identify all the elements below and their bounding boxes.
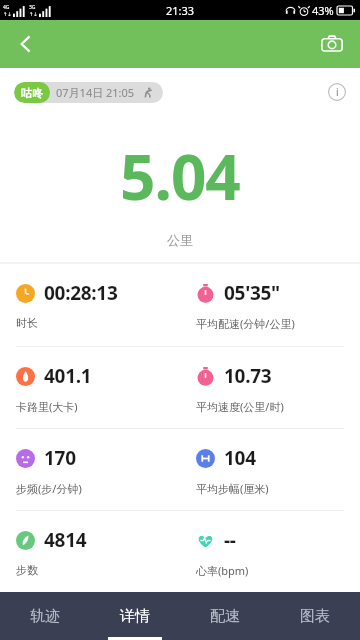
staticText: i [336, 85, 339, 99]
staticText: -- [224, 527, 236, 553]
staticText: 4814 [44, 527, 87, 553]
button[interactable]: 10.73 [180, 347, 360, 428]
staticText: 平均步幅(厘米) [196, 481, 269, 496]
staticText: ↑↓ [3, 11, 12, 17]
button[interactable]: 401.1 [0, 347, 180, 428]
staticText: 平均配速(分钟/公里) [196, 316, 295, 331]
staticText: 07月14日 21:05 [56, 85, 135, 100]
button[interactable]: 104 [180, 429, 360, 510]
button[interactable]: 详情 [90, 592, 180, 640]
button[interactable]: 00:28:13 [0, 264, 180, 346]
staticText: 心率(bpm) [196, 563, 249, 578]
staticText: 卡路里(大卡) [16, 399, 78, 414]
staticText: 咕咚 [21, 86, 43, 100]
staticText: 10.73 [224, 363, 272, 389]
button[interactable]: 咕咚 [14, 82, 163, 103]
button[interactable]: 配速 [180, 592, 270, 640]
staticText: 5.04 [120, 134, 240, 218]
staticText: 轨迹 [30, 607, 60, 626]
button[interactable]: 轨迹 [0, 592, 90, 640]
button[interactable]: 图表 [270, 592, 360, 640]
staticText: 21:33 [166, 3, 195, 18]
staticText: 05'35" [224, 280, 280, 306]
staticText: 4G [3, 4, 10, 11]
staticText: 步数 [16, 563, 38, 577]
staticText: 平均速度(公里/时) [196, 399, 284, 414]
staticText: 3G [29, 4, 36, 11]
staticText: 详情 [120, 607, 150, 626]
button[interactable]: Back [6, 24, 46, 64]
button[interactable]: 170 [0, 429, 180, 510]
button[interactable]: Camera [312, 24, 352, 64]
staticText: 公里 [167, 232, 193, 248]
staticText: 401.1 [44, 363, 92, 389]
button[interactable]: 05'35" [180, 264, 360, 346]
staticText: 00:28:13 [44, 280, 118, 306]
button[interactable]: -- [180, 511, 360, 592]
staticText: 配速 [210, 607, 240, 626]
staticText: 170 [44, 445, 76, 471]
staticText: 图表 [300, 607, 330, 626]
staticText: 时长 [16, 316, 38, 330]
button[interactable]: 4814 [0, 511, 180, 592]
staticText: 104 [224, 445, 256, 471]
staticText: ↑↓ [29, 11, 38, 17]
staticText: 步频(步/分钟) [16, 481, 82, 496]
button[interactable]: Info [327, 82, 347, 102]
staticText: 43% [312, 3, 334, 18]
